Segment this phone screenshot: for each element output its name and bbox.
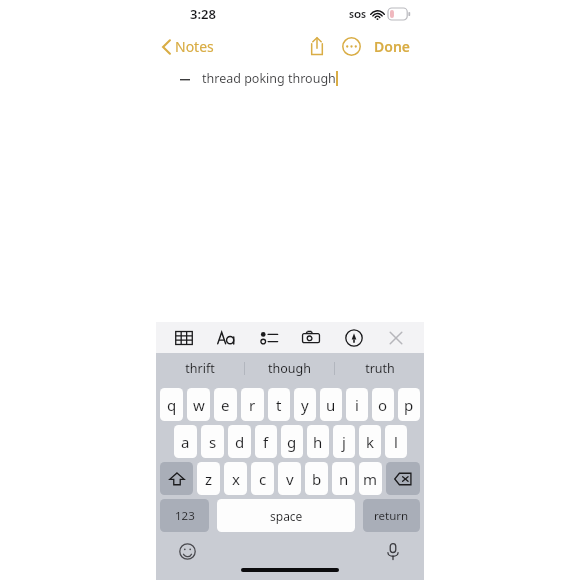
- staticText: c: [259, 469, 267, 489]
- staticText: thrift: [185, 360, 215, 377]
- staticText: thread poking through: [202, 70, 336, 87]
- staticText: v: [286, 469, 294, 489]
- staticText: z: [205, 469, 213, 489]
- staticText: q: [167, 395, 177, 415]
- button[interactable]: w: [187, 388, 210, 421]
- staticText: Notes: [175, 37, 214, 56]
- staticText: 123: [175, 508, 195, 524]
- staticText: truth: [365, 360, 395, 377]
- staticText: x: [232, 469, 240, 489]
- button[interactable]: More options: [337, 32, 365, 60]
- button[interactable]: Backspace: [386, 462, 420, 495]
- button[interactable]: z: [197, 462, 220, 495]
- button[interactable]: Shift: [160, 462, 193, 495]
- staticText: return: [374, 508, 409, 524]
- staticText: r: [249, 395, 256, 415]
- button[interactable]: n: [332, 462, 355, 495]
- staticText: l: [394, 432, 398, 452]
- button[interactable]: Dictation: [380, 538, 406, 564]
- button[interactable]: b: [305, 462, 328, 495]
- staticText: m: [363, 469, 378, 489]
- staticText: g: [287, 432, 297, 452]
- button[interactable]: x: [224, 462, 247, 495]
- button[interactable]: f: [255, 425, 277, 458]
- button[interactable]: d: [228, 425, 251, 458]
- button[interactable]: though: [245, 353, 334, 384]
- staticText: t: [276, 395, 282, 415]
- button[interactable]: g: [281, 425, 303, 458]
- button[interactable]: y: [294, 388, 316, 421]
- staticText: w: [193, 395, 205, 415]
- staticText: though: [268, 360, 311, 377]
- staticText: h: [313, 432, 323, 452]
- staticText: y: [301, 395, 309, 415]
- staticText: s: [209, 432, 217, 452]
- button[interactable]: t: [268, 388, 290, 421]
- staticText: a: [181, 432, 190, 452]
- button[interactable]: Format text: [211, 323, 241, 353]
- staticText: o: [378, 395, 388, 415]
- staticText: i: [355, 395, 359, 415]
- button[interactable]: Done: [369, 33, 416, 60]
- button[interactable]: 123: [160, 499, 209, 532]
- staticText: SOS: [349, 8, 367, 20]
- staticText: u: [326, 395, 336, 415]
- button[interactable]: Checklist: [254, 323, 284, 353]
- staticText: f: [263, 432, 269, 452]
- button[interactable]: q: [160, 388, 183, 421]
- button[interactable]: o: [372, 388, 394, 421]
- button[interactable]: thread poking through: [156, 70, 424, 87]
- button[interactable]: p: [398, 388, 420, 421]
- button[interactable]: Notes: [159, 34, 217, 59]
- button[interactable]: v: [278, 462, 301, 495]
- staticText: k: [366, 432, 375, 452]
- button[interactable]: Markup: [339, 323, 369, 353]
- staticText: d: [235, 432, 245, 452]
- button[interactable]: i: [346, 388, 368, 421]
- staticText: e: [221, 395, 230, 415]
- button[interactable]: r: [241, 388, 264, 421]
- button[interactable]: Close keyboard: [381, 323, 411, 353]
- button[interactable]: k: [359, 425, 381, 458]
- button[interactable]: Emoji: [174, 538, 200, 564]
- button[interactable]: truth: [335, 353, 424, 384]
- staticText: n: [339, 469, 349, 489]
- button[interactable]: h: [307, 425, 329, 458]
- button[interactable]: Share: [303, 32, 331, 60]
- button[interactable]: return: [363, 499, 420, 532]
- button[interactable]: c: [251, 462, 274, 495]
- staticText: 3:28: [190, 5, 216, 23]
- button[interactable]: s: [201, 425, 224, 458]
- staticText: Done: [374, 37, 411, 56]
- staticText: p: [404, 395, 414, 415]
- button[interactable]: space: [217, 499, 355, 532]
- button[interactable]: Table: [169, 323, 199, 353]
- staticText: j: [342, 432, 346, 452]
- button[interactable]: Camera: [296, 323, 326, 353]
- button[interactable]: m: [359, 462, 382, 495]
- button[interactable]: e: [214, 388, 237, 421]
- button[interactable]: a: [174, 425, 197, 458]
- staticText: space: [270, 508, 303, 524]
- button[interactable]: u: [320, 388, 342, 421]
- button[interactable]: l: [385, 425, 407, 458]
- button[interactable]: thrift: [156, 353, 244, 384]
- staticText: b: [312, 469, 322, 489]
- button[interactable]: j: [333, 425, 355, 458]
